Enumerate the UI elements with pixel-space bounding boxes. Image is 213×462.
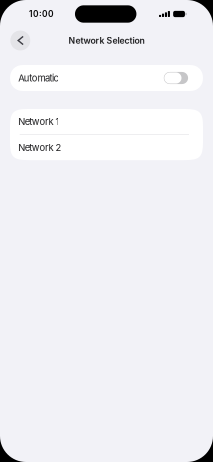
- button[interactable]: Network 2: [10, 135, 203, 160]
- button[interactable]: Network 1: [10, 109, 203, 134]
- staticText: 10:00: [29, 9, 54, 19]
- staticText: Network 1: [18, 116, 59, 127]
- button[interactable]: Back: [8, 28, 32, 52]
- staticText: Network 2: [18, 142, 61, 153]
- button[interactable]: Automatic: [10, 65, 203, 91]
- staticText: Automatic: [18, 72, 58, 84]
- staticText: Network Selection: [68, 35, 144, 46]
